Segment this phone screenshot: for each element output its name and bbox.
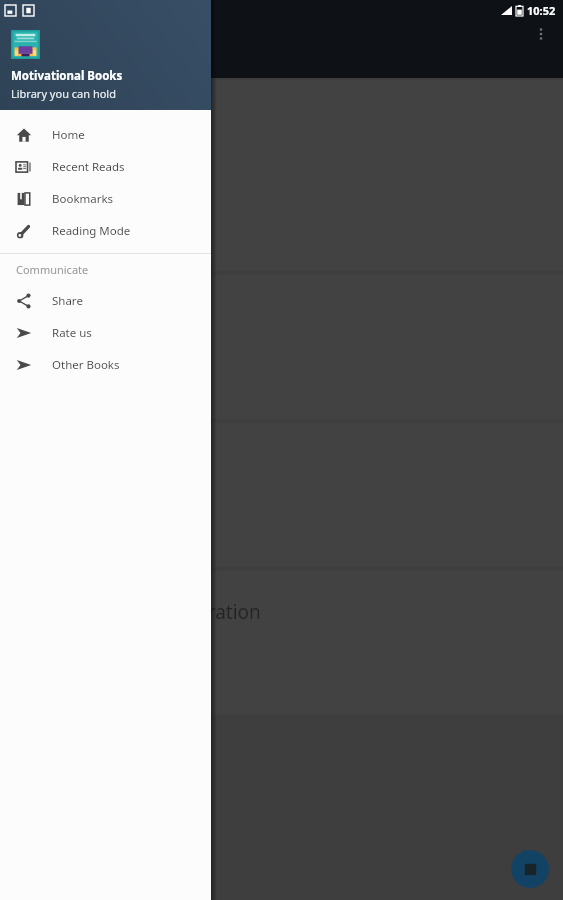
button[interactable]: Bookmarks bbox=[0, 183, 211, 215]
button[interactable]: More options bbox=[527, 20, 555, 48]
button[interactable]: TEXT BOOK bbox=[38, 0, 112, 78]
button[interactable]: The Power of Concentration bbox=[0, 571, 563, 715]
staticText: Recent Reads bbox=[52, 159, 125, 175]
button[interactable]: Share bbox=[0, 285, 211, 317]
button[interactable]: Other Books bbox=[0, 349, 211, 381]
staticText: Dare to have courage bbox=[12, 303, 204, 329]
button[interactable]: Dare to have courage bbox=[0, 275, 563, 419]
staticText: Motivational Books bbox=[12, 334, 102, 348]
button[interactable]: THE PURPOSE OF LIFE bbox=[0, 423, 563, 567]
button[interactable]: Reading Mode bbox=[0, 215, 211, 247]
staticText: Library you can hold bbox=[11, 86, 116, 101]
staticText: 10:52 bbox=[527, 3, 556, 18]
staticText: Rate us bbox=[52, 325, 92, 341]
staticText: The Power of Concentration bbox=[12, 599, 261, 625]
button[interactable]: Rate us bbox=[0, 317, 211, 349]
staticText: Motivational Books bbox=[11, 68, 123, 84]
button[interactable]: Search bbox=[511, 850, 549, 888]
staticText: Other Books bbox=[52, 357, 120, 373]
staticText: Share bbox=[52, 293, 83, 309]
button[interactable] bbox=[0, 80, 563, 271]
staticText: Bookmarks bbox=[52, 191, 114, 207]
button[interactable]: Home bbox=[0, 119, 211, 151]
staticText: Home bbox=[52, 127, 85, 143]
staticText: Communicate bbox=[16, 262, 89, 277]
button[interactable]: Recent Reads bbox=[0, 151, 211, 183]
staticText: Reading Mode bbox=[52, 223, 131, 239]
